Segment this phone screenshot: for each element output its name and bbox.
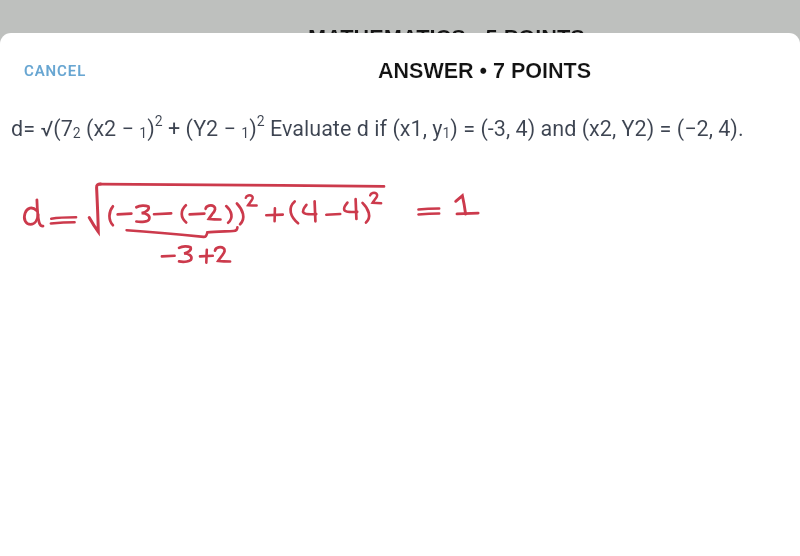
staticText: ANSWER • 7 POINTS <box>378 59 591 83</box>
staticText: MATHEMATICS • 5 POINTS <box>308 25 585 49</box>
button[interactable]: CANCEL <box>12 52 99 90</box>
staticText: d= √(72 (x2 − 1)2 + (Y2 − 1)2 Evaluate d… <box>11 113 800 142</box>
staticText: CANCEL <box>24 62 87 80</box>
